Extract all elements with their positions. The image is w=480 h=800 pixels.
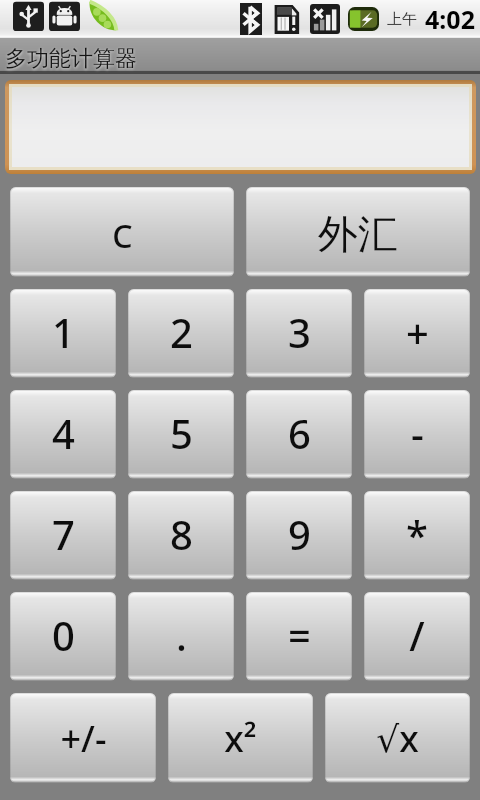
button[interactable]: +/- (10, 693, 156, 783)
button[interactable]: 7 (10, 491, 116, 580)
button[interactable]: 0 (10, 592, 116, 681)
staticText: 1 (52, 305, 75, 359)
staticText: 4 (52, 406, 75, 460)
staticText: = (288, 608, 311, 662)
staticText: 9 (288, 507, 311, 561)
staticText: C (112, 214, 133, 258)
button[interactable]: 6 (246, 390, 352, 479)
button[interactable]: 5 (128, 390, 234, 479)
staticText: x² (224, 714, 257, 763)
staticText: 3 (288, 305, 311, 359)
button[interactable]: 2 (128, 289, 234, 378)
button[interactable]: - (364, 390, 470, 479)
button[interactable]: C (10, 187, 234, 277)
staticText: 0 (52, 608, 75, 662)
staticText: 5 (170, 406, 193, 460)
button[interactable]: . (128, 592, 234, 681)
button[interactable]: * (364, 491, 470, 580)
staticText: 7 (52, 507, 75, 561)
staticText: 6 (288, 406, 311, 460)
staticText: . (176, 608, 187, 662)
button[interactable]: Calculator display (12, 87, 469, 167)
staticText: √x (376, 714, 419, 763)
button[interactable]: + (364, 289, 470, 378)
button[interactable]: / (364, 592, 470, 681)
staticText: * (406, 507, 428, 561)
staticText: 上午 (387, 10, 417, 29)
staticText: 2 (170, 305, 193, 359)
button[interactable]: x² (168, 693, 313, 783)
button[interactable]: 8 (128, 491, 234, 580)
button[interactable]: 1 (10, 289, 116, 378)
staticText: 8 (170, 507, 193, 561)
staticText: 多功能计算器 (5, 45, 137, 73)
button[interactable]: √x (325, 693, 470, 783)
button[interactable]: 9 (246, 491, 352, 580)
staticText: - (411, 406, 424, 460)
staticText: + (406, 305, 429, 359)
button[interactable]: = (246, 592, 352, 681)
staticText: +/- (60, 714, 107, 763)
staticText: 4:02 (425, 2, 475, 36)
button[interactable]: 3 (246, 289, 352, 378)
button[interactable]: 外汇 (246, 187, 470, 277)
button[interactable]: 4 (10, 390, 116, 479)
staticText: / (409, 608, 425, 662)
staticText: 外汇 (318, 209, 398, 259)
